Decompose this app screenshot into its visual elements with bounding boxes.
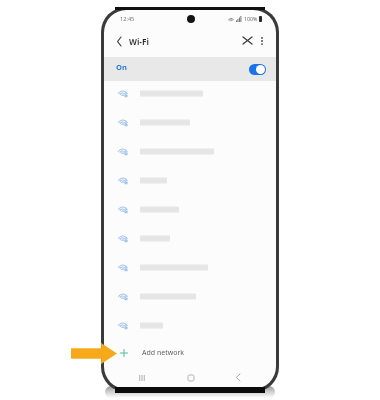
button[interactable]	[104, 109, 276, 135]
button[interactable]: Close	[241, 34, 254, 47]
button[interactable]: Back	[231, 371, 244, 384]
staticText: Add network	[142, 348, 185, 358]
button[interactable]: On	[104, 57, 276, 81]
button[interactable]	[104, 138, 276, 164]
staticText: Wi-Fi	[129, 36, 149, 47]
staticText: 100%	[244, 15, 258, 22]
button[interactable]: Recent apps	[135, 371, 148, 384]
button[interactable]	[104, 283, 276, 309]
button[interactable]	[104, 225, 276, 251]
button[interactable]: More options	[255, 34, 268, 47]
button[interactable]: Add network	[104, 340, 276, 366]
button[interactable]	[104, 196, 276, 222]
button[interactable]	[104, 312, 276, 338]
staticText: On	[116, 62, 127, 72]
button[interactable]	[104, 167, 276, 193]
staticText: 12:45	[120, 15, 135, 23]
button[interactable]: Home	[184, 371, 197, 384]
button[interactable]	[104, 80, 276, 106]
button[interactable]: Back	[111, 33, 127, 49]
button[interactable]	[104, 254, 276, 280]
